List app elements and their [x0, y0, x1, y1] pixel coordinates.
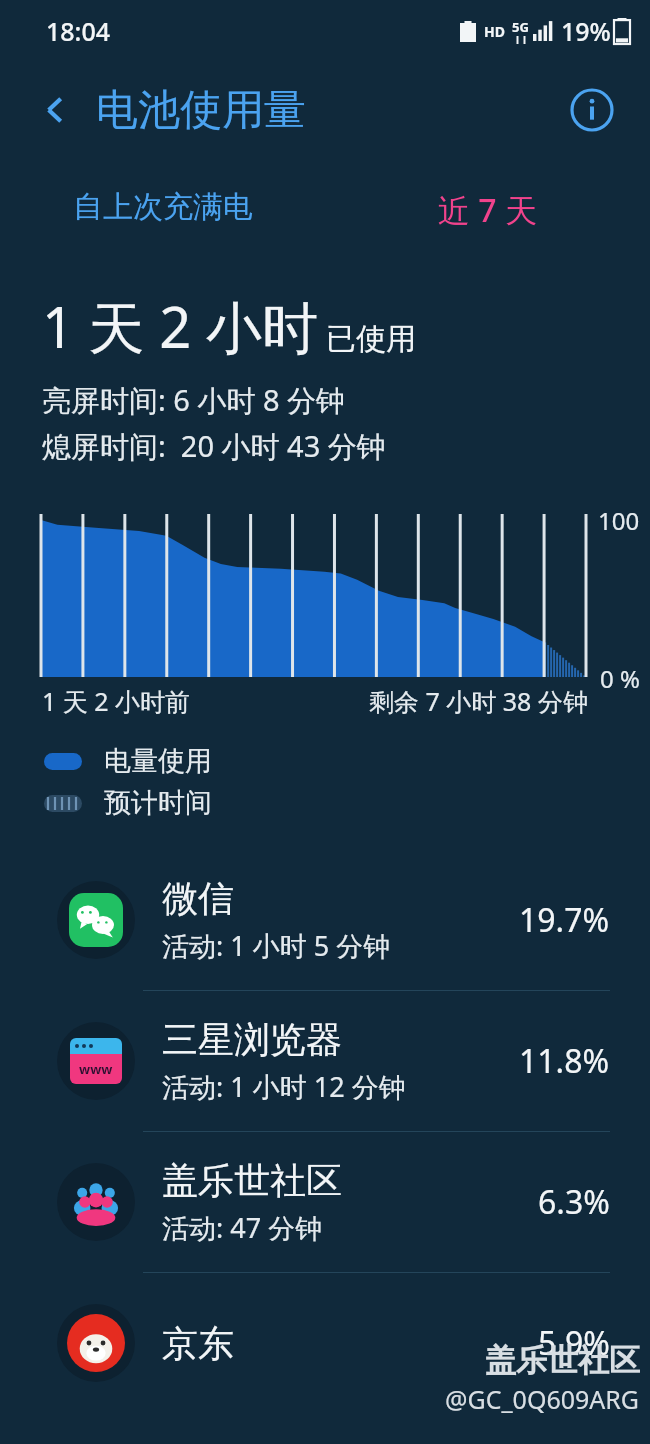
- button[interactable]: 近 7 天: [325, 188, 650, 232]
- button[interactable]: www: [0, 991, 650, 1131]
- button[interactable]: 盖乐世社区: [0, 1132, 650, 1272]
- staticText: 预计时间: [104, 786, 212, 820]
- staticText: 11.8%: [519, 1039, 610, 1083]
- staticText: 已使用: [326, 320, 416, 358]
- staticText: www: [79, 1060, 113, 1078]
- staticText: @GC_0Q609ARG: [445, 1382, 640, 1416]
- staticText: 电池使用量: [96, 84, 306, 137]
- staticText: 盖乐世社区: [485, 1341, 640, 1380]
- staticText: 微信: [162, 876, 234, 921]
- staticText: 100: [598, 504, 640, 537]
- staticText: 电量使用: [104, 744, 212, 778]
- staticText: 熄屏时间: 20 小时 43 分钟: [42, 426, 386, 466]
- button[interactable]: Information: [566, 84, 618, 136]
- staticText: 近 7 天: [438, 188, 537, 232]
- staticText: 1 天 2 小时: [42, 288, 318, 364]
- staticText: 活动: 1 小时 5 分钟: [162, 927, 391, 964]
- staticText: 19%: [561, 14, 611, 48]
- staticText: 0 %: [600, 662, 640, 695]
- staticText: 三星浏览器: [162, 1017, 342, 1062]
- staticText: 6.3%: [538, 1180, 610, 1224]
- staticText: 京东: [162, 1321, 234, 1366]
- staticText: 活动: 47 分钟: [162, 1209, 323, 1246]
- button[interactable]: Back: [28, 82, 84, 138]
- staticText: 剩余 7 小时 38 分钟: [369, 684, 588, 718]
- staticText: 自上次充满电: [73, 188, 253, 226]
- staticText: 活动: 1 小时 12 分钟: [162, 1068, 406, 1105]
- staticText: 盖乐世社区: [162, 1158, 342, 1203]
- staticText: 18:04: [46, 14, 111, 48]
- staticText: 5.9%: [538, 1321, 610, 1365]
- staticText: HD: [484, 22, 505, 41]
- button[interactable]: 京东: [0, 1273, 650, 1413]
- button[interactable]: 自上次充满电: [0, 188, 325, 226]
- staticText: 1 天 2 小时前: [42, 684, 191, 718]
- staticText: 5G: [512, 18, 529, 36]
- staticText: 亮屏时间: 6 小时 8 分钟: [42, 380, 346, 420]
- staticText: 19.7%: [519, 898, 610, 942]
- button[interactable]: 微信: [0, 850, 650, 990]
